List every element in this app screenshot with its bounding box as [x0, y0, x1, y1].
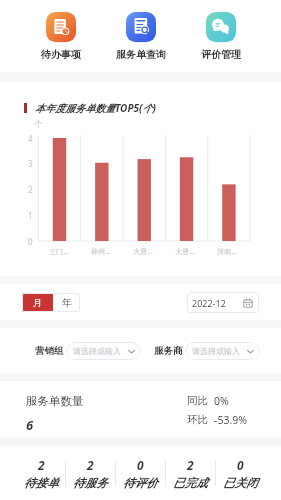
staticText: 服务商	[154, 345, 183, 357]
staticText: 环比	[187, 413, 214, 426]
staticText: 本年度服务单数量TOP5(个)	[35, 101, 156, 115]
button[interactable]: 2	[17, 446, 65, 500]
staticText: 0	[137, 457, 144, 473]
button[interactable]: 年	[53, 293, 80, 312]
staticText: -53.9%	[214, 413, 247, 427]
staticText: 4	[28, 133, 33, 144]
staticText: 大唐...	[122, 247, 164, 257]
staticText: 2	[28, 184, 33, 195]
staticText: 大唐...	[164, 247, 206, 257]
button[interactable]: 0	[216, 446, 265, 500]
staticText: 2022-12	[192, 297, 226, 309]
button[interactable]: 评价管理	[181, 0, 261, 61]
staticText: 年	[62, 297, 72, 309]
staticText: 已完成	[173, 476, 208, 490]
staticText: 3	[28, 158, 33, 169]
button[interactable]: 请选择或输入	[185, 342, 260, 360]
button[interactable]: 2022-12	[187, 292, 259, 313]
staticText: 待接单	[24, 476, 59, 490]
other: Pick month	[243, 298, 253, 308]
staticText: 营销组	[35, 345, 64, 357]
staticText: 评价管理	[201, 48, 241, 61]
staticText: 0%	[214, 394, 229, 408]
staticText: 已关闭	[223, 476, 258, 490]
staticText: 待评价	[123, 476, 158, 490]
staticText: 待服务	[73, 476, 108, 490]
button[interactable]: 2	[66, 446, 115, 500]
staticText: 2	[38, 457, 45, 473]
staticText: 三门...	[38, 247, 80, 257]
staticText: 同比	[187, 394, 214, 407]
staticText: 河南...	[206, 247, 248, 257]
staticText: 1	[28, 210, 33, 221]
button[interactable]: 服务单查询	[101, 0, 181, 61]
button[interactable]: 月	[22, 293, 53, 312]
staticText: 请选择或输入	[192, 346, 240, 356]
staticText: 2	[187, 457, 194, 473]
button[interactable]: 2	[166, 446, 215, 500]
staticText: 个	[34, 119, 43, 130]
staticText: 月	[33, 297, 43, 309]
staticText: 林州...	[80, 247, 122, 257]
button[interactable]: 0	[116, 446, 165, 500]
staticText: 请选择或输入	[73, 346, 121, 356]
button[interactable]: 请选择或输入	[66, 342, 141, 360]
button[interactable]: 待办事项	[21, 0, 101, 61]
staticText: 待办事项	[41, 48, 81, 61]
staticText: 2	[87, 457, 94, 473]
staticText: 服务单数量	[26, 394, 84, 408]
staticText: 0	[28, 236, 33, 247]
staticText: 0	[237, 457, 244, 473]
staticText: 服务单查询	[116, 48, 166, 61]
staticText: 6	[26, 416, 34, 434]
